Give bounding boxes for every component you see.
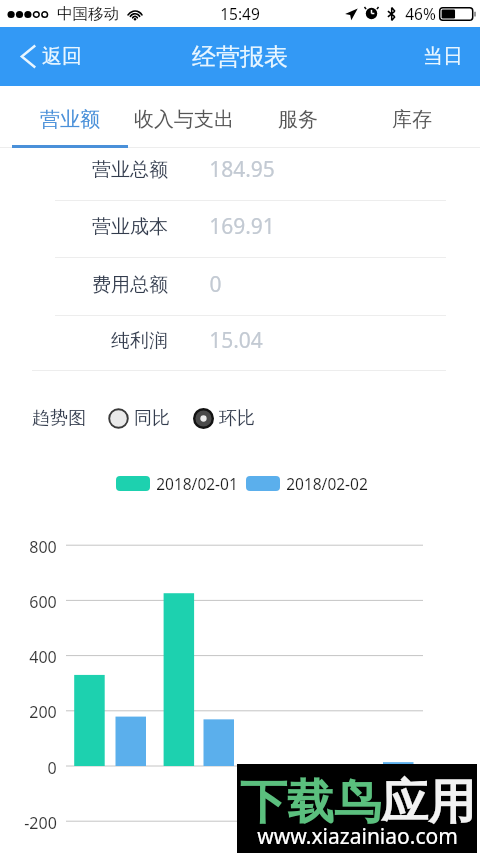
staticText: 200 <box>29 701 57 723</box>
button[interactable]: 环比 <box>193 407 255 430</box>
button[interactable]: 营业额 <box>13 86 127 148</box>
staticText: 环比 <box>219 407 255 430</box>
staticText: 169.91 <box>209 212 275 241</box>
staticText: 46% <box>405 3 436 24</box>
button[interactable]: 服务 <box>241 86 355 148</box>
button[interactable]: 当日 <box>407 34 480 79</box>
button[interactable]: 返回 <box>0 34 96 79</box>
staticText: 纯利润 <box>111 329 168 353</box>
staticText: 营业成本 <box>92 215 168 239</box>
staticText: 营业额 <box>40 107 100 132</box>
staticText: 收入与支出 <box>134 107 234 132</box>
staticText: 0 <box>47 757 57 779</box>
staticText: -200 <box>24 812 57 834</box>
staticText: 2018/02-01 <box>156 473 238 494</box>
button[interactable]: 收入与支出 <box>127 86 241 148</box>
button[interactable]: 营业成本 <box>0 201 480 258</box>
button[interactable]: 营业总额 <box>0 144 480 201</box>
staticText: 600 <box>29 591 57 613</box>
button[interactable]: 同比 <box>108 407 170 430</box>
staticText: 800 <box>29 536 57 558</box>
staticText: 营业总额 <box>92 158 168 182</box>
staticText: 应用 <box>381 773 475 832</box>
staticText: 0 <box>209 270 222 299</box>
button[interactable]: 纯利润 <box>0 316 480 371</box>
staticText: 服务 <box>278 107 318 132</box>
staticText: 中国移动 <box>57 4 119 24</box>
staticText: 经营报表 <box>192 42 288 72</box>
staticText: 返回 <box>42 44 82 69</box>
staticText: 15:49 <box>220 3 260 24</box>
staticText: 费用总额 <box>92 273 168 297</box>
staticText: 400 <box>29 646 57 668</box>
staticText: 2018/02-02 <box>286 473 368 494</box>
staticText: 15.04 <box>209 326 263 355</box>
staticText: 库存 <box>392 107 432 132</box>
staticText: 同比 <box>134 407 170 430</box>
staticText: 趋势图 <box>32 407 86 430</box>
staticText: 下载鸟 <box>240 773 381 832</box>
button[interactable]: 库存 <box>355 86 469 148</box>
staticText: www.xiazainiao.com <box>257 822 458 851</box>
staticText: 当日 <box>423 44 463 69</box>
button[interactable]: 费用总额 <box>0 258 480 316</box>
staticText: 184.95 <box>209 155 275 184</box>
